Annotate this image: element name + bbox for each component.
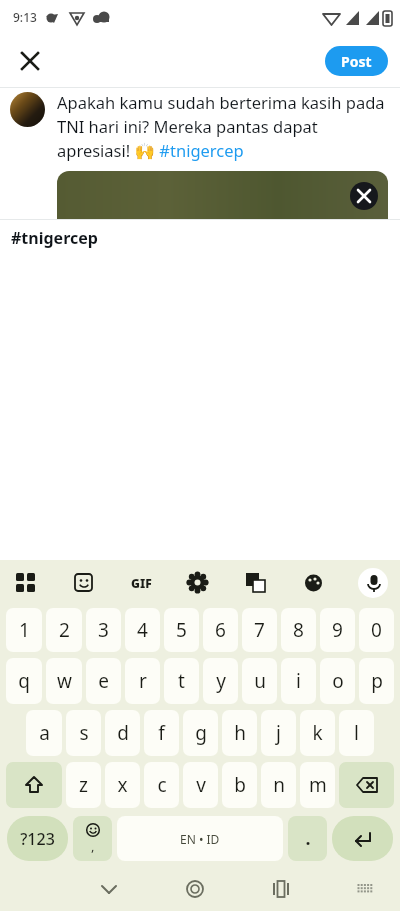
button[interactable]: h (222, 710, 257, 756)
staticText: w (57, 668, 72, 694)
staticText: v (196, 772, 206, 798)
button[interactable]: y (203, 658, 238, 704)
staticText: h (234, 720, 246, 746)
staticText: m (309, 772, 327, 798)
button[interactable]: Keyboard switcher (350, 874, 380, 904)
staticText: 2 (59, 617, 70, 643)
button[interactable]: #tnigercep (0, 220, 400, 255)
staticText: 3 (98, 617, 109, 643)
staticText: a (39, 720, 50, 746)
button[interactable]: Recents (264, 872, 298, 906)
button[interactable]: i (281, 658, 316, 704)
staticText: n (273, 772, 285, 798)
button[interactable]: Apps (12, 569, 40, 597)
button[interactable]: t (164, 658, 199, 704)
button[interactable]: Hide keyboard (92, 872, 126, 906)
button[interactable]: Voice input (358, 568, 388, 598)
button[interactable]: EN • ID (117, 816, 283, 861)
staticText: u (254, 668, 266, 694)
staticText: 8 (293, 617, 304, 643)
button[interactable]: Themes (300, 569, 328, 597)
button[interactable]: Settings (184, 569, 212, 597)
button[interactable]: s (66, 710, 101, 756)
button[interactable]: r (125, 658, 160, 704)
button[interactable]: o (320, 658, 355, 704)
staticText: 4 (137, 617, 148, 643)
button[interactable]: 5 (164, 608, 199, 652)
staticText: k (312, 720, 323, 746)
button[interactable]: 1 (6, 608, 42, 652)
button[interactable]: n (261, 762, 296, 808)
button[interactable]: q (6, 658, 42, 704)
button[interactable]: Shift (6, 762, 62, 808)
staticText: b (234, 772, 246, 798)
staticText: 7 (254, 617, 265, 643)
button[interactable]: p (359, 658, 394, 704)
staticText: f (158, 720, 165, 746)
button[interactable]: 8 (281, 608, 316, 652)
button[interactable]: Post (325, 46, 388, 76)
staticText: g (195, 720, 207, 746)
staticText: q (18, 668, 30, 694)
button[interactable]: 9 (320, 608, 355, 652)
staticText: 5 (176, 617, 187, 643)
button[interactable]: m (300, 762, 335, 808)
staticText: z (79, 772, 88, 798)
button[interactable]: Remove image (350, 182, 378, 210)
button[interactable]: k (300, 710, 335, 756)
button[interactable]: Close (8, 39, 52, 83)
staticText: s (79, 720, 89, 746)
staticText: 9 (332, 617, 343, 643)
button[interactable]: . (288, 816, 327, 861)
staticText: 1 (19, 617, 30, 643)
button[interactable]: 0 (359, 608, 394, 652)
button[interactable]: f (144, 710, 179, 756)
button[interactable]: ?123 (7, 816, 68, 861)
staticText: j (276, 720, 281, 746)
button[interactable]: l (339, 710, 374, 756)
staticText: . (305, 826, 311, 851)
staticText: r (139, 668, 147, 694)
button[interactable]: GIF (128, 570, 154, 596)
button[interactable]: z (66, 762, 101, 808)
button[interactable]: 3 (86, 608, 121, 652)
staticText: i (296, 668, 301, 694)
staticText: l (354, 720, 359, 746)
button[interactable]: w (46, 658, 82, 704)
staticText: d (117, 720, 129, 746)
staticText: p (371, 668, 383, 694)
button[interactable]: a (26, 710, 62, 756)
staticText: EN • ID (180, 831, 220, 847)
staticText: #tnigercep (11, 227, 98, 249)
button[interactable]: e (86, 658, 121, 704)
staticText: x (117, 772, 128, 798)
button[interactable]: 4 (125, 608, 160, 652)
button[interactable] (10, 92, 45, 127)
staticText: 0 (371, 617, 382, 643)
staticText: c (157, 772, 167, 798)
button[interactable]: c (144, 762, 179, 808)
staticText: e (98, 668, 109, 694)
button[interactable]: d (105, 710, 140, 756)
staticText: GIF (131, 575, 152, 591)
button[interactable]: Home (178, 872, 212, 906)
button[interactable]: j (261, 710, 296, 756)
button[interactable]: b (222, 762, 257, 808)
staticText: t (178, 668, 185, 694)
button[interactable]: 7 (242, 608, 277, 652)
button[interactable]: g (183, 710, 218, 756)
button[interactable]: u (242, 658, 277, 704)
button[interactable]: v (183, 762, 218, 808)
button[interactable]: 2 (46, 608, 82, 652)
button[interactable]: x (105, 762, 140, 808)
button[interactable]: Stickers (70, 569, 98, 597)
staticText: Post (341, 52, 372, 71)
button[interactable]: Emoji (73, 816, 112, 861)
button[interactable]: 6 (203, 608, 238, 652)
staticText: y (216, 668, 226, 694)
staticText: 9:13 (13, 9, 37, 25)
button[interactable]: Backspace (339, 762, 394, 808)
button[interactable]: Translate (242, 569, 270, 597)
staticText: o (332, 668, 344, 694)
button[interactable]: Enter (332, 816, 393, 861)
